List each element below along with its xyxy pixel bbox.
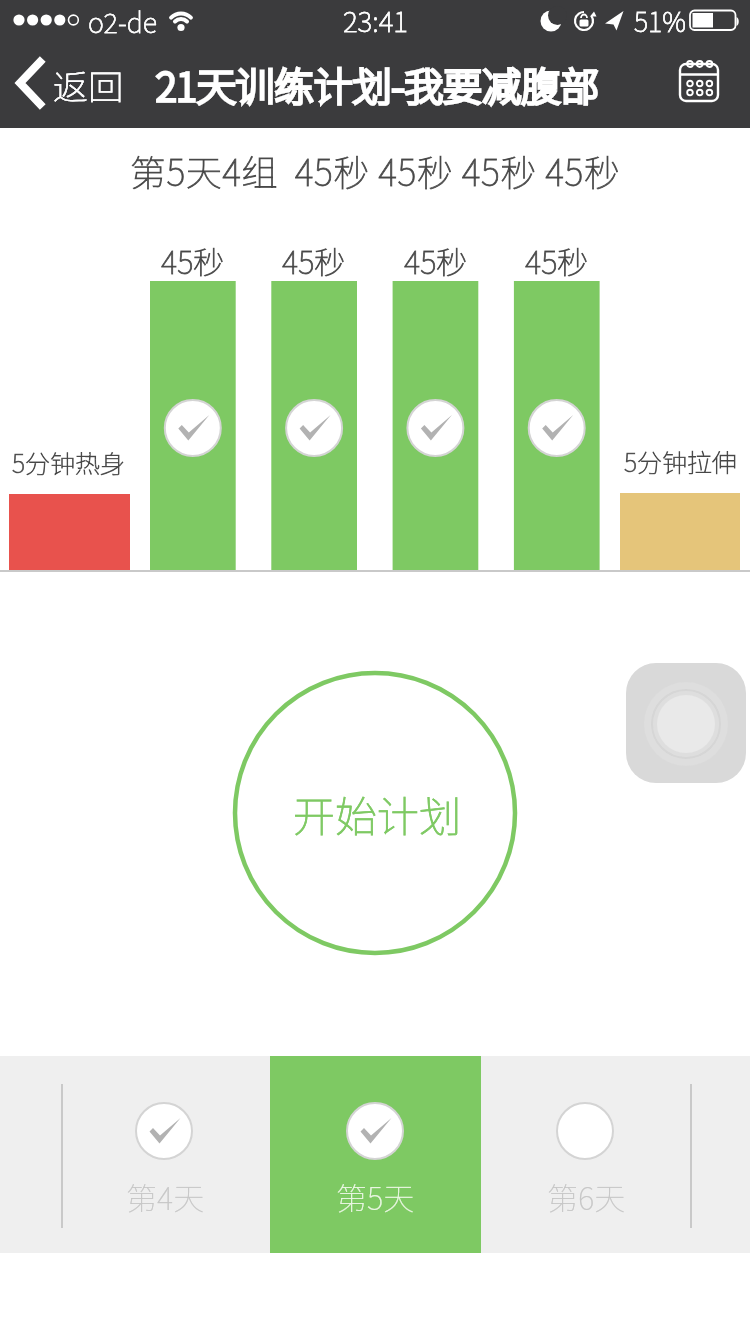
staticText: 51% — [634, 1, 686, 40]
staticText: 23:41 — [343, 0, 408, 40]
staticText: 第5天4组 45秒 45秒 45秒 45秒 — [130, 144, 621, 196]
staticText: 5分钟拉伸 — [624, 443, 738, 479]
staticText: 开始计划 — [293, 783, 462, 844]
staticText: 21天训练计划-我要减腹部 — [156, 56, 600, 112]
staticText: 45秒 — [525, 238, 589, 282]
staticText: 5分钟热身 — [12, 444, 126, 480]
staticText: 第4天 — [126, 1174, 205, 1219]
staticText: 5分钟热身 — [12, 444, 126, 480]
staticText: 45秒 — [404, 238, 468, 282]
staticText: o2-de — [88, 2, 157, 41]
staticText: 返回 — [53, 59, 124, 110]
staticText: 5分钟拉伸 — [624, 443, 738, 479]
staticText: o2-de — [88, 2, 157, 41]
button[interactable] — [481, 1056, 691, 1253]
button[interactable] — [8, 54, 138, 116]
staticText: 45秒 — [282, 238, 346, 282]
button[interactable] — [626, 663, 746, 783]
button[interactable] — [62, 1056, 270, 1253]
staticText: 45秒 — [525, 238, 589, 282]
staticText: 21天训练计划-我要减腹部 — [156, 56, 600, 112]
staticText: 45秒 — [161, 238, 225, 282]
staticText: 第5天4组 45秒 45秒 45秒 45秒 — [130, 144, 621, 196]
staticText: 45秒 — [282, 238, 346, 282]
staticText: 返回 — [53, 59, 124, 110]
staticText: 第5天 — [336, 1174, 415, 1219]
staticText: 开始计划 — [293, 783, 462, 844]
staticText: 45秒 — [161, 238, 225, 282]
button[interactable] — [235, 673, 515, 953]
staticText: 45秒 — [404, 238, 468, 282]
staticText: 51% — [634, 1, 686, 40]
button[interactable] — [668, 52, 730, 114]
staticText: 第6天 — [547, 1174, 626, 1219]
button[interactable] — [270, 1056, 481, 1253]
staticText: 23:41 — [343, 0, 408, 40]
